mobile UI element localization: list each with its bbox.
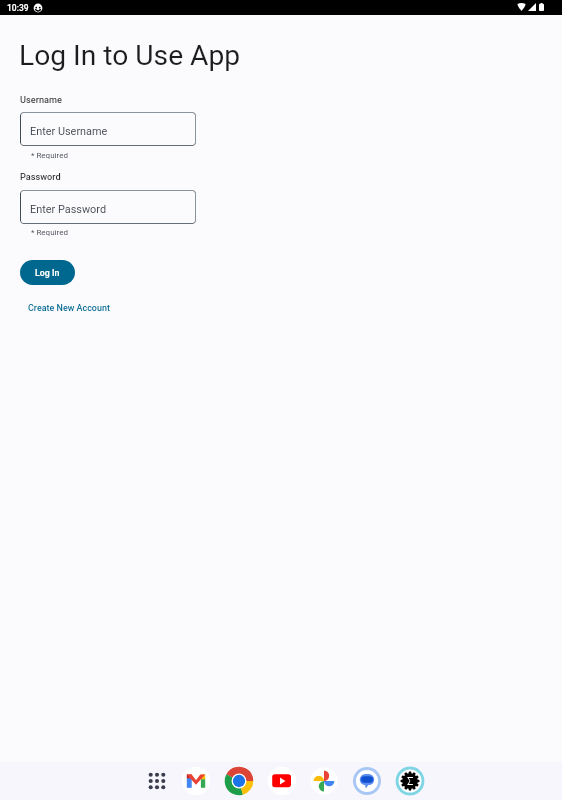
staticText: Enter Password	[30, 203, 107, 216]
staticText: Log In	[35, 268, 60, 278]
staticText: Username	[20, 94, 62, 105]
button[interactable]: Enter Password	[20, 190, 196, 224]
button[interactable]: Messages	[352, 766, 382, 796]
button[interactable]: All apps	[142, 766, 172, 796]
staticText: Create New Account	[28, 303, 110, 314]
other: Notification	[33, 3, 43, 13]
staticText: Password	[20, 171, 61, 182]
button[interactable]: Gmail	[181, 766, 211, 796]
staticText: * Required	[31, 228, 68, 237]
button[interactable]: YouTube	[267, 766, 297, 796]
button[interactable]: Calculator	[395, 766, 425, 796]
button[interactable]: Log In	[20, 260, 75, 285]
button[interactable]: Chrome	[224, 766, 254, 796]
staticText: Log In to Use App	[19, 39, 241, 72]
button[interactable]: Create New Account	[25, 299, 113, 318]
staticText: 10:39	[7, 3, 29, 13]
staticText: Enter Username	[30, 125, 108, 138]
staticText: * Required	[31, 151, 68, 160]
button[interactable]: Enter Username	[20, 112, 196, 146]
button[interactable]: Google Photos	[309, 766, 339, 796]
